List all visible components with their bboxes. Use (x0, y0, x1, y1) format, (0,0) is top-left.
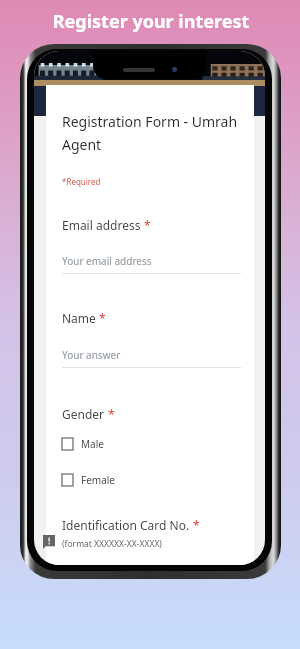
button[interactable]: Your answer (62, 348, 241, 368)
staticText: (format XXXXXX-XX-XXXX) (62, 538, 162, 550)
staticText: *Required (62, 176, 101, 187)
staticText: Register your interest (1, 9, 300, 34)
button[interactable]: Female (62, 473, 241, 487)
staticText: * (144, 217, 151, 233)
staticText: Identification Card No. (62, 517, 190, 533)
staticText: Registration Form - Umrah Agent (62, 112, 241, 154)
staticText: Your answer (62, 348, 121, 362)
staticText: Email address (62, 217, 141, 233)
staticText: Male (81, 437, 104, 451)
staticText: * (108, 406, 115, 422)
staticText: * (193, 517, 200, 533)
staticText: Your email address (62, 254, 152, 268)
staticText: Gender (62, 406, 105, 422)
button[interactable]: Male (62, 437, 241, 451)
staticText: Name (62, 310, 96, 326)
button[interactable]: Your email address (62, 254, 241, 274)
staticText: * (99, 310, 106, 326)
staticText: Female (81, 473, 116, 487)
